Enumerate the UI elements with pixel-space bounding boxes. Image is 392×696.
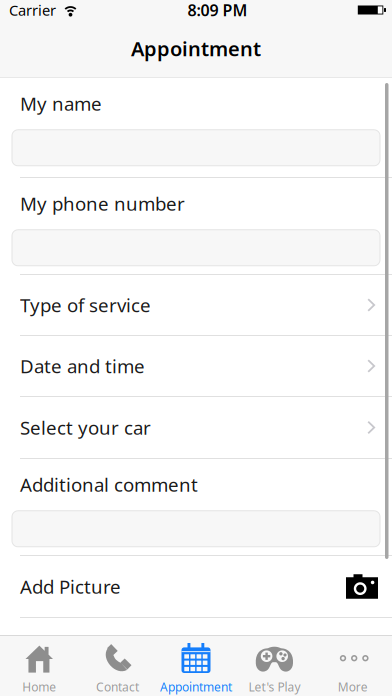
staticText: Appointment (160, 679, 232, 695)
staticText: Type of service (20, 293, 151, 317)
staticText: Add Picture (20, 574, 121, 599)
button[interactable]: Contact (78, 636, 157, 696)
button[interactable]: Add Picture (0, 556, 392, 617)
button[interactable]: Select your car (0, 397, 392, 458)
staticText: More (338, 679, 368, 695)
staticText: Home (22, 679, 56, 695)
staticText: Date and time (20, 354, 145, 378)
staticText: My name (20, 91, 102, 116)
button[interactable]: More (314, 636, 392, 696)
staticText: Let's Play (248, 679, 300, 695)
staticText: Additional comment (20, 472, 198, 497)
button[interactable]: Date and time (0, 336, 392, 396)
staticText: Select your car (20, 415, 151, 440)
staticText: Appointment (131, 35, 261, 62)
staticText: Contact (96, 679, 139, 695)
staticText: My phone number (20, 191, 185, 216)
button[interactable]: Type of service (0, 275, 392, 335)
staticText: Carrier (9, 0, 56, 20)
button[interactable]: Let's Play (235, 636, 314, 696)
button[interactable]: Appointment (157, 636, 235, 696)
staticText: 8:09 PM (187, 0, 247, 21)
button[interactable]: Home (0, 636, 78, 696)
